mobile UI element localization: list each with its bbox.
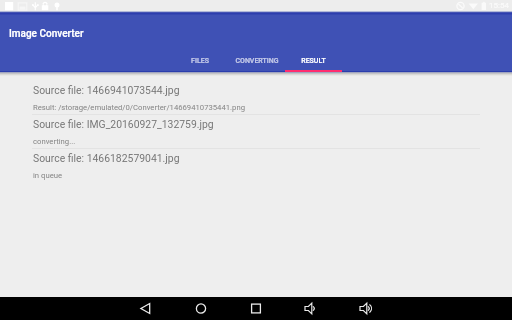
- staticText: RESULT: [301, 57, 326, 65]
- staticText: Result: /storage/emulated/0/Converter/14…: [33, 103, 245, 112]
- button[interactable]: FILES: [171, 44, 228, 72]
- button[interactable]: Source file: 1466941073544.jpg: [0, 80, 512, 114]
- button[interactable]: Back: [126, 297, 166, 320]
- staticText: in queue: [33, 171, 63, 180]
- button[interactable]: Source file: IMG_20160927_132759.jpg: [0, 114, 512, 148]
- button[interactable]: CONVERTING: [228, 44, 285, 72]
- button[interactable]: Source file: 1466182579041.jpg: [0, 148, 512, 182]
- staticText: Source file: 1466182579041.jpg: [33, 152, 180, 164]
- staticText: Source file: IMG_20160927_132759.jpg: [33, 118, 214, 130]
- staticText: CONVERTING: [235, 57, 279, 65]
- staticText: converting...: [33, 137, 76, 146]
- staticText: Image Converter: [9, 28, 84, 40]
- staticText: Source file: 1466941073544.jpg: [33, 84, 180, 96]
- button[interactable]: Volume down: [291, 297, 331, 320]
- staticText: 15:54: [489, 1, 509, 10]
- button[interactable]: Volume up: [346, 297, 386, 320]
- button[interactable]: RESULT: [285, 44, 342, 72]
- staticText: FILES: [191, 57, 209, 65]
- button[interactable]: Recent apps: [236, 297, 276, 320]
- button[interactable]: Home: [181, 297, 221, 320]
